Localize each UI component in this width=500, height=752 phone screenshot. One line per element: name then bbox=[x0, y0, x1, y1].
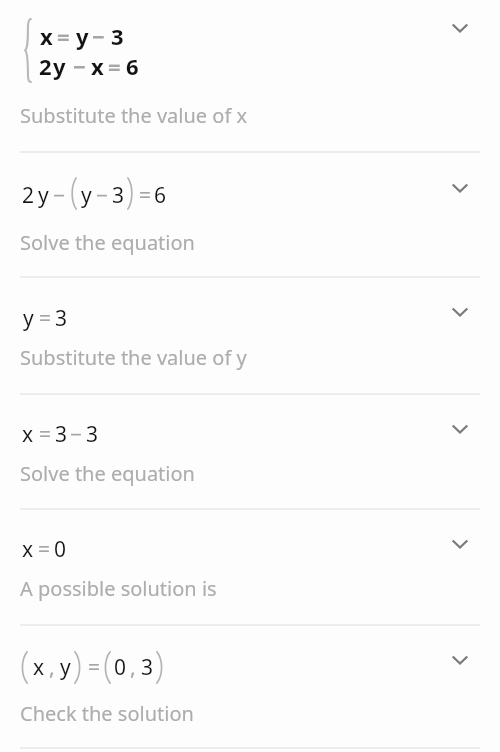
staticText: x bbox=[33, 653, 45, 682]
staticText: 2 bbox=[22, 181, 35, 210]
button[interactable]: Expand step bbox=[448, 176, 472, 200]
staticText: 3 bbox=[55, 304, 68, 333]
staticText: y bbox=[38, 181, 49, 210]
staticText: − bbox=[70, 420, 83, 449]
button[interactable]: Expand step bbox=[448, 648, 472, 672]
staticText: Solve the equation bbox=[20, 229, 195, 256]
staticText: − bbox=[73, 51, 86, 81]
staticText: 0 bbox=[114, 653, 127, 682]
staticText: = bbox=[139, 181, 152, 210]
staticText: 3 bbox=[111, 21, 124, 51]
staticText: y bbox=[81, 181, 92, 210]
staticText: 3 bbox=[86, 420, 99, 449]
staticText: 6 bbox=[154, 181, 167, 210]
staticText: x bbox=[40, 21, 53, 51]
button[interactable]: Expand step bbox=[448, 532, 472, 556]
staticText: 3 bbox=[141, 653, 154, 682]
staticText: Substitute the value of y bbox=[20, 344, 247, 371]
staticText: 2 bbox=[39, 51, 52, 81]
staticText: − bbox=[53, 181, 66, 210]
staticText: = bbox=[38, 535, 51, 564]
staticText: y bbox=[53, 51, 66, 81]
staticText: x bbox=[91, 51, 104, 81]
staticText: A possible solution is bbox=[20, 575, 217, 602]
staticText: − bbox=[92, 21, 105, 51]
staticText: 3 bbox=[112, 181, 125, 210]
button[interactable] bbox=[0, 625, 500, 747]
staticText: x bbox=[22, 535, 34, 564]
staticText: y bbox=[23, 304, 34, 333]
staticText: = bbox=[39, 304, 52, 333]
staticText: Substitute the value of x bbox=[20, 102, 248, 129]
button[interactable] bbox=[0, 0, 500, 151]
staticText: = bbox=[39, 420, 52, 449]
button[interactable] bbox=[0, 152, 500, 276]
button[interactable] bbox=[0, 509, 500, 623]
staticText: 6 bbox=[126, 51, 139, 81]
button[interactable] bbox=[0, 394, 500, 508]
staticText: = bbox=[108, 51, 121, 81]
staticText: , bbox=[49, 653, 55, 682]
button[interactable] bbox=[0, 277, 500, 393]
staticText: − bbox=[96, 181, 109, 210]
staticText: 0 bbox=[54, 535, 67, 564]
staticText: = bbox=[57, 21, 70, 51]
staticText: 3 bbox=[55, 420, 68, 449]
staticText: Check the solution bbox=[20, 700, 194, 727]
button[interactable]: Expand step bbox=[448, 300, 472, 324]
staticText: y bbox=[60, 653, 71, 682]
staticText: = bbox=[88, 653, 101, 682]
staticText: Solve the equation bbox=[20, 460, 195, 487]
staticText: x bbox=[22, 420, 34, 449]
staticText: , bbox=[130, 653, 136, 682]
button[interactable]: Expand step bbox=[448, 16, 472, 40]
button[interactable]: Expand step bbox=[448, 417, 472, 441]
staticText: y bbox=[76, 21, 89, 51]
